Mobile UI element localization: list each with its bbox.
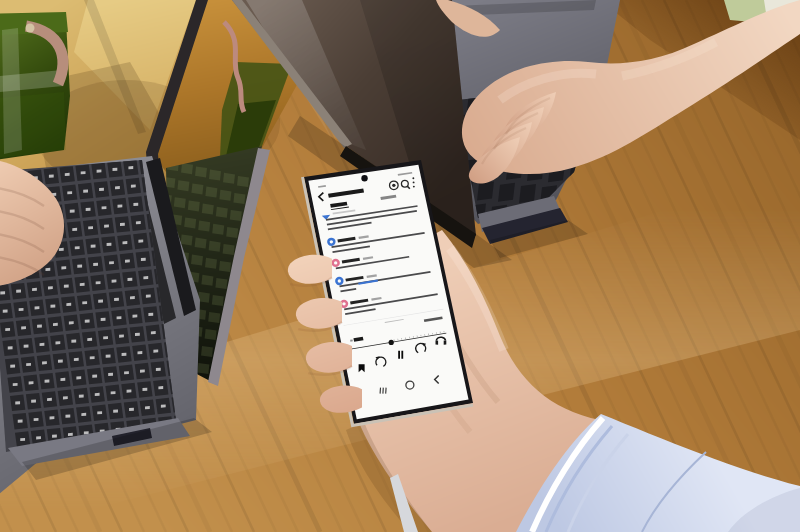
button[interactable]: Voice meeting transcript held on a phone [0, 0, 800, 532]
